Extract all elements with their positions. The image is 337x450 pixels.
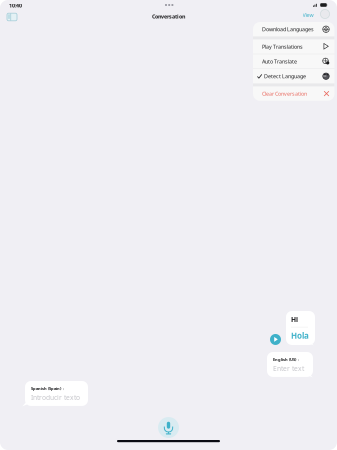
staticText: Hi (291, 315, 298, 324)
staticText: Introducir texto (31, 393, 80, 402)
staticText: Spanish (Spain) (31, 386, 61, 391)
staticText: Clear Conversation (262, 90, 307, 97)
button[interactable]: Detect Language (253, 69, 334, 83)
staticText: Play Translations (262, 43, 303, 50)
button[interactable]: English (US) (267, 352, 313, 377)
button[interactable]: Spanish (Spain) (25, 381, 88, 406)
staticText: Conversation (152, 13, 185, 20)
button[interactable]: More options (318, 7, 332, 21)
staticText: Download Languages (262, 26, 314, 33)
staticText: Hola (291, 330, 309, 341)
button[interactable]: Download Languages (253, 22, 334, 36)
staticText: › (297, 356, 299, 363)
staticText: View (302, 11, 313, 19)
button[interactable]: Play Translations (253, 39, 334, 54)
staticText: 10:40 (9, 2, 22, 9)
button[interactable]: Auto Translate (253, 54, 334, 69)
button[interactable]: Multitasking controls (162, 1, 176, 9)
staticText: English (US) (273, 357, 296, 362)
staticText: › (62, 385, 64, 392)
button[interactable]: Play translation (270, 334, 281, 345)
button[interactable]: Record (158, 417, 179, 438)
button[interactable]: Toggle Sidebar (1, 7, 22, 26)
staticText: Detect Language (264, 73, 306, 80)
button[interactable]: View (298, 7, 317, 23)
button[interactable]: Clear Conversation (253, 86, 334, 101)
staticText: Enter text (273, 364, 304, 373)
staticText: Auto Translate (262, 58, 297, 65)
